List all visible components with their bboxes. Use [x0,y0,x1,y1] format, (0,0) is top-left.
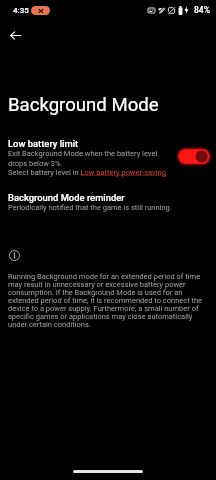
staticText: Select battery level in Low battery powe… [8,168,166,177]
staticText: Periodically notified that the game is s… [8,203,172,212]
button[interactable]: Low battery limit toggle [179,146,209,167]
button[interactable]: Back [2,22,28,48]
staticText: Background Mode reminder [8,192,125,203]
staticText: Running Background mode for an extended … [8,272,208,329]
staticText: Exit Background Mode when the battery le… [8,149,178,168]
staticText: Background Mode [8,94,159,116]
staticText: Low battery limit [8,138,79,149]
staticText: 4:35 [13,6,29,15]
staticText: 84% [194,5,210,15]
